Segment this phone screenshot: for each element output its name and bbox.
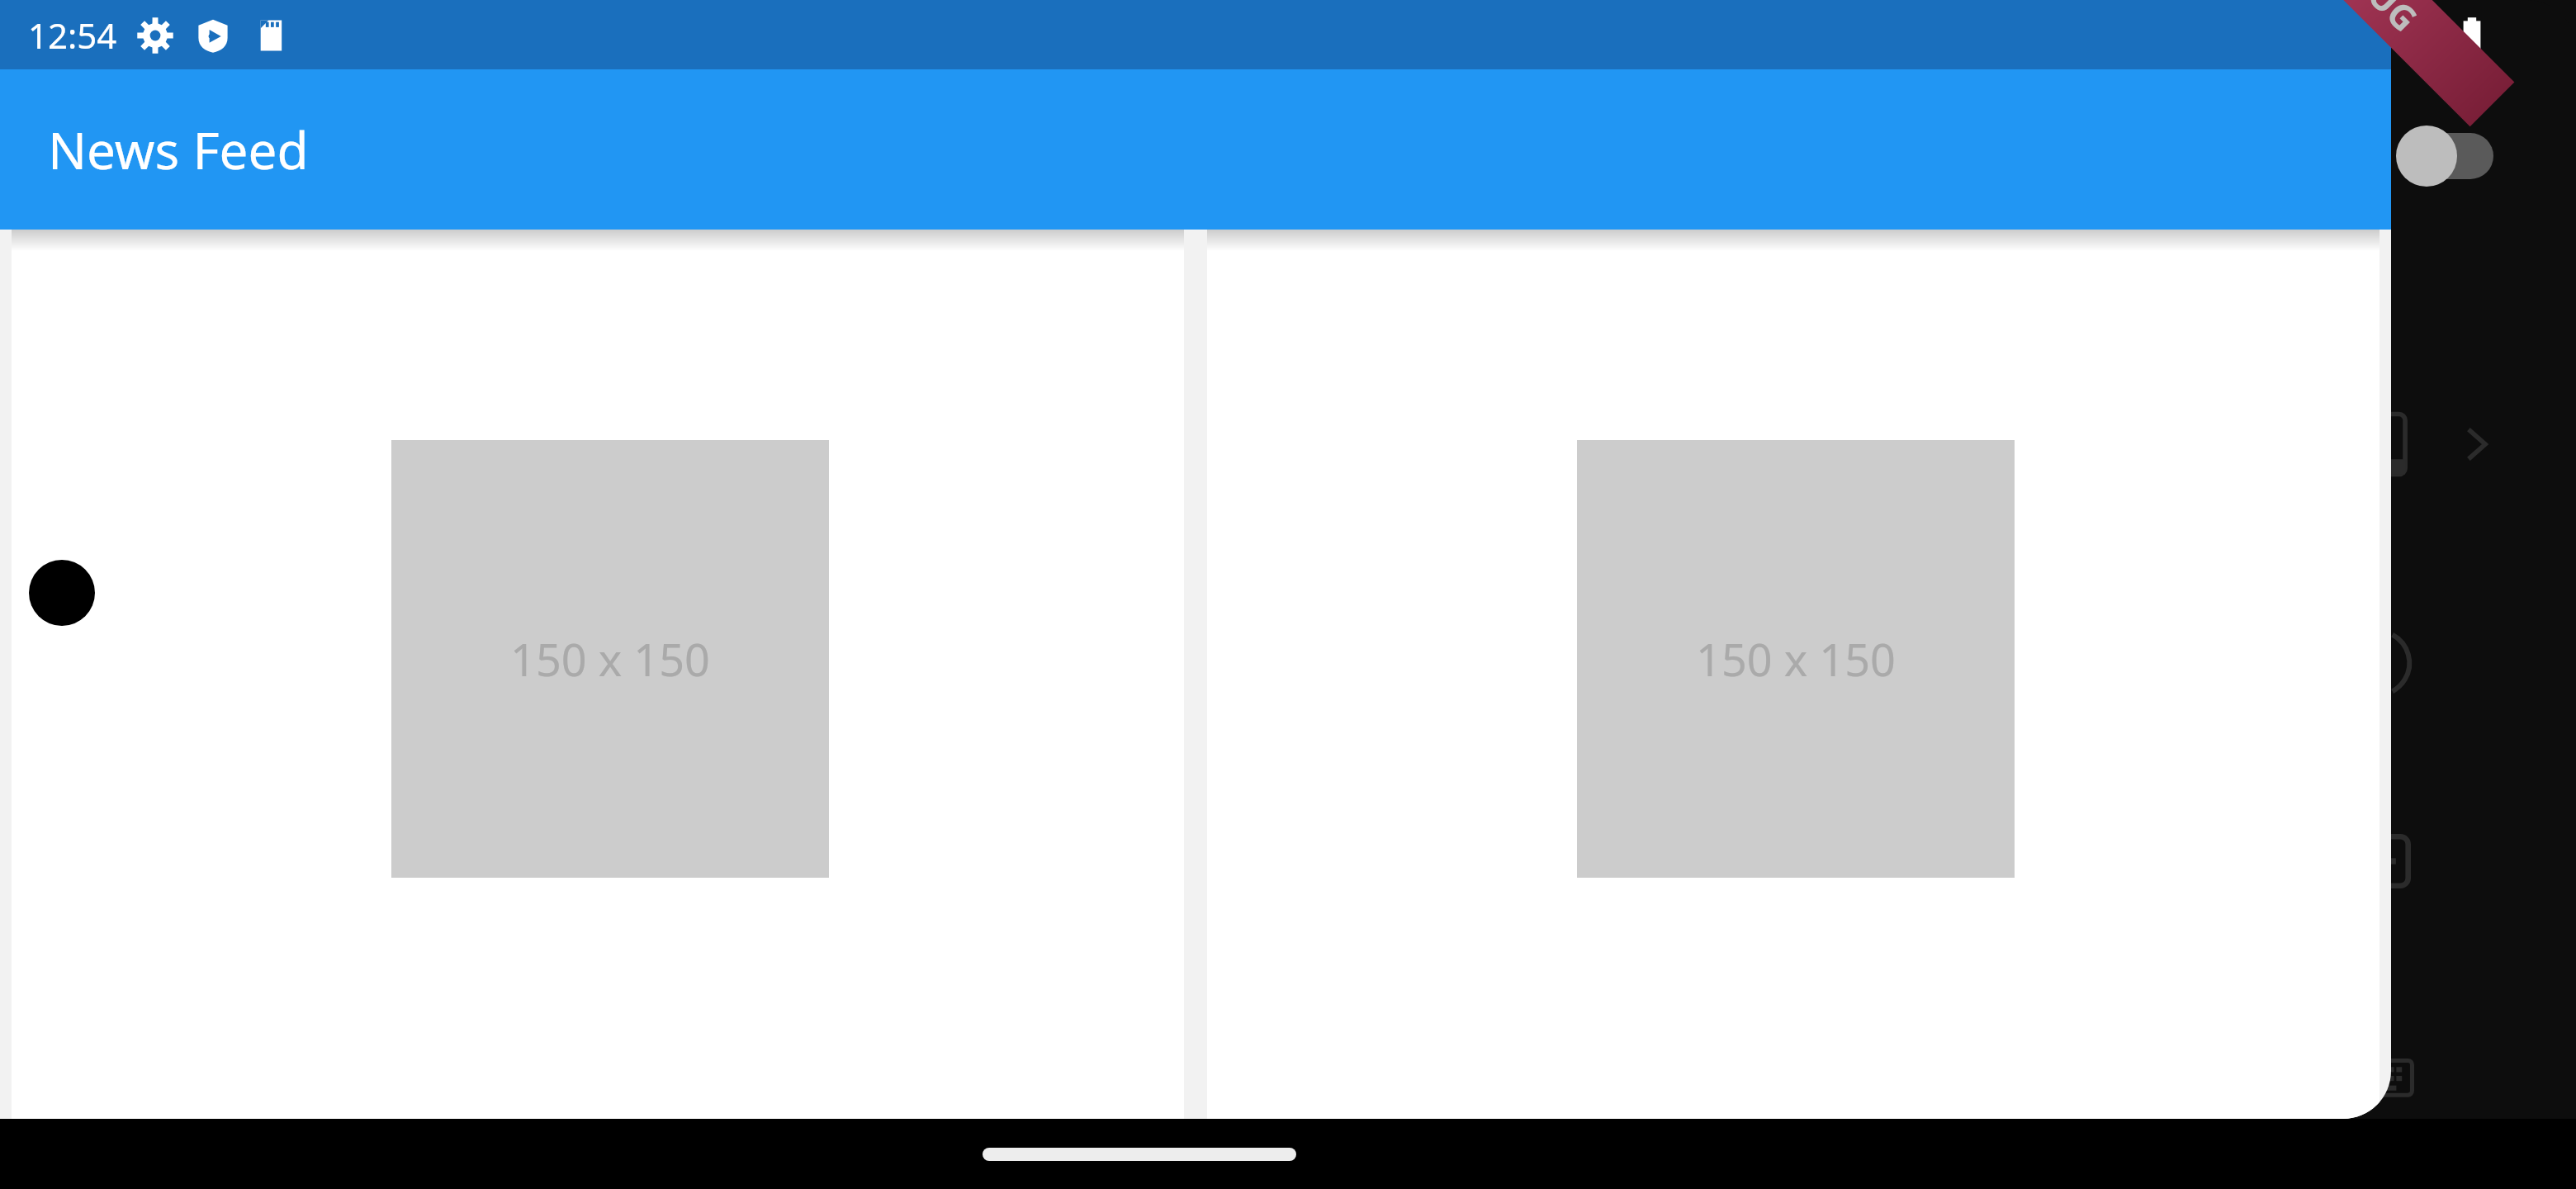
button[interactable]: 150 x 150 [1207,230,2379,1119]
button[interactable]: 150 x 150 [391,440,829,878]
button[interactable]: Rotate [2340,628,2411,699]
button[interactable]: Expand [2454,421,2500,467]
staticText: 150 x 150 [510,628,710,689]
button[interactable]: Power toggle [2396,124,2493,188]
button[interactable]: 150 x 150 [1577,440,2015,878]
staticText: News Feed [48,115,309,184]
button[interactable]: Author avatar [29,560,95,626]
button[interactable]: D-pad [2356,834,2411,888]
button[interactable]: Device [2353,413,2416,476]
button[interactable]: Keyboard [2355,1049,2414,1108]
button[interactable]: Author avatar [12,230,1184,1119]
staticText: 12:54 [28,12,117,59]
staticText: DEBUG [2311,0,2429,41]
staticText: 150 x 150 [1696,628,1896,689]
